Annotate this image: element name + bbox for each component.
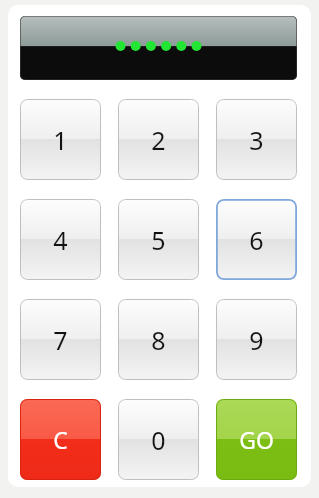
staticText: 6 bbox=[249, 223, 264, 257]
staticText: 3 bbox=[249, 123, 264, 157]
button[interactable]: 8 bbox=[118, 299, 199, 380]
staticText: 2 bbox=[151, 123, 166, 157]
staticText: 9 bbox=[249, 323, 264, 357]
staticText: 4 bbox=[53, 223, 68, 257]
staticText: C bbox=[53, 424, 68, 455]
staticText: 1 bbox=[53, 123, 68, 157]
button[interactable]: 2 bbox=[118, 99, 199, 180]
button[interactable]: 5 bbox=[118, 199, 199, 280]
button[interactable]: Clear bbox=[20, 399, 101, 480]
staticText: 7 bbox=[53, 323, 68, 357]
button[interactable]: GO bbox=[216, 399, 297, 480]
staticText: 5 bbox=[151, 223, 166, 257]
button[interactable]: 0 bbox=[118, 399, 199, 480]
staticText: 0 bbox=[151, 423, 166, 457]
staticText: GO bbox=[239, 424, 274, 455]
staticText: 8 bbox=[151, 323, 166, 357]
button[interactable]: 4 bbox=[20, 199, 101, 280]
button[interactable]: 6 bbox=[216, 199, 297, 280]
button[interactable]: 3 bbox=[216, 99, 297, 180]
button[interactable]: 9 bbox=[216, 299, 297, 380]
button[interactable]: 7 bbox=[20, 299, 101, 380]
button[interactable]: 1 bbox=[20, 99, 101, 180]
